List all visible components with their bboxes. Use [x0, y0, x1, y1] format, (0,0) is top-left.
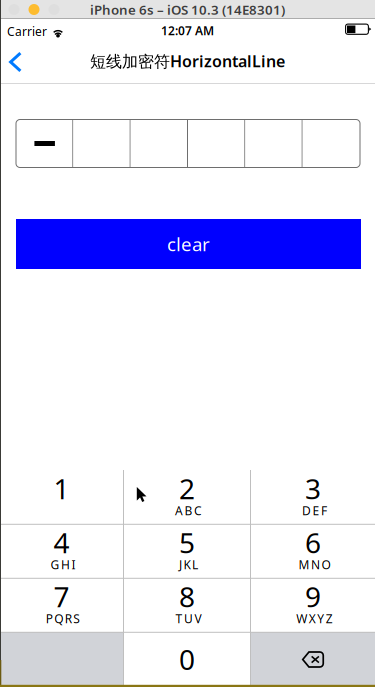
staticText: ABC [175, 502, 202, 518]
staticText: 1 [53, 470, 69, 507]
staticText: iPhone 6s – iOS 10.3 (14E8301) [90, 1, 285, 18]
button[interactable]: Back [0, 40, 42, 84]
staticText: 5 [179, 524, 195, 561]
staticText: clear [167, 232, 210, 256]
staticText: 0 [179, 641, 195, 678]
staticText: 短线加密符HorizontalLine [90, 50, 285, 72]
staticText: GHI [50, 556, 75, 572]
staticText: 6 [305, 524, 321, 561]
button[interactable]: 9 [251, 578, 375, 632]
staticText: 8 [179, 578, 195, 615]
staticText: MNO [298, 556, 330, 572]
staticText: Carrier [7, 23, 47, 39]
staticText: JKL [179, 556, 198, 572]
button[interactable]: 3 [251, 470, 375, 524]
staticText: 9 [305, 578, 321, 615]
button[interactable]: 2 [124, 470, 250, 524]
button[interactable]: Delete [251, 632, 375, 687]
button[interactable]: 7 [0, 578, 123, 632]
staticText: 12:07 AM [161, 22, 214, 38]
staticText: 3 [305, 470, 321, 507]
button[interactable]: 5 [124, 524, 250, 578]
button[interactable]: Blank [0, 632, 123, 687]
staticText: DEF [302, 502, 327, 518]
staticText: 7 [53, 578, 69, 615]
button[interactable]: 8 [124, 578, 250, 632]
button[interactable]: 1 [0, 470, 123, 524]
button[interactable]: clear [16, 219, 361, 269]
staticText: WXYZ [296, 610, 333, 626]
staticText: TUV [175, 610, 201, 626]
staticText: 2 [179, 470, 195, 507]
staticText: PQRS [46, 610, 80, 626]
staticText: 4 [53, 524, 69, 561]
button[interactable]: 0 [124, 632, 250, 687]
button[interactable]: 6 [251, 524, 375, 578]
button[interactable]: 4 [0, 524, 123, 578]
